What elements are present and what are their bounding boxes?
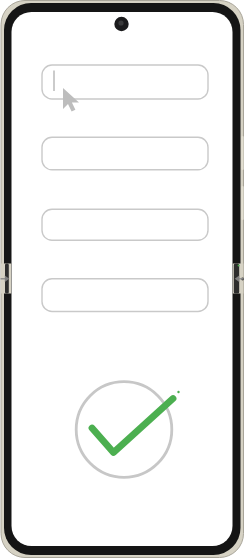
button[interactable]	[42, 209, 208, 240]
button[interactable]	[42, 137, 208, 170]
button[interactable]	[42, 279, 208, 312]
button[interactable]	[42, 65, 208, 99]
button[interactable]	[76, 382, 172, 478]
